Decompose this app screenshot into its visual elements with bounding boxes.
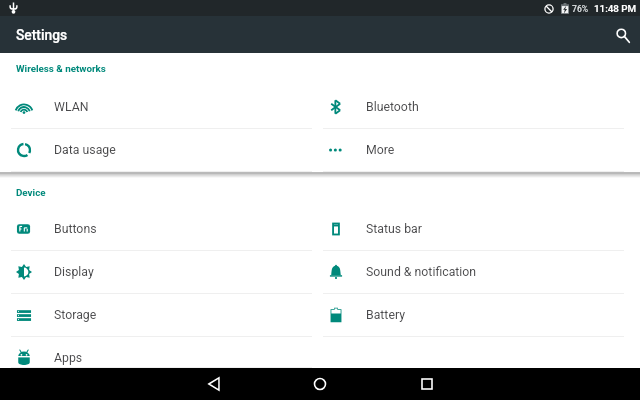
button[interactable]: Buttons bbox=[0, 208, 312, 250]
button[interactable]: Display bbox=[0, 251, 312, 293]
staticText: Sound & notification bbox=[366, 265, 477, 279]
button[interactable]: Battery bbox=[312, 294, 624, 336]
staticText: Wireless & networks bbox=[16, 63, 106, 74]
button[interactable]: Home bbox=[291, 368, 349, 400]
button[interactable]: Bluetooth bbox=[312, 86, 624, 128]
staticText: WLAN bbox=[54, 100, 89, 114]
button[interactable]: Status bar bbox=[312, 208, 624, 250]
staticText: 11:48 PM bbox=[594, 3, 637, 14]
staticText: Device bbox=[16, 187, 46, 198]
staticText: Settings bbox=[16, 27, 68, 43]
button[interactable]: Sound & notification bbox=[312, 251, 624, 293]
button[interactable]: Search bbox=[608, 20, 638, 50]
staticText: Status bar bbox=[366, 222, 422, 236]
button[interactable]: More bbox=[312, 129, 624, 171]
staticText: Bluetooth bbox=[366, 100, 419, 114]
button[interactable]: WLAN bbox=[0, 86, 312, 128]
button[interactable]: Storage bbox=[0, 294, 312, 336]
staticText: Battery bbox=[366, 308, 406, 322]
staticText: More bbox=[366, 143, 395, 157]
button[interactable]: Recent apps bbox=[398, 368, 456, 400]
staticText: 76% bbox=[572, 4, 589, 14]
button[interactable]: Data usage bbox=[0, 129, 312, 171]
button[interactable]: Back bbox=[184, 368, 242, 400]
staticText: Apps bbox=[54, 351, 83, 365]
staticText: Storage bbox=[54, 308, 97, 322]
button[interactable]: Apps bbox=[0, 337, 312, 367]
staticText: Display bbox=[54, 265, 94, 279]
staticText: Buttons bbox=[54, 222, 97, 236]
staticText: Data usage bbox=[54, 143, 116, 157]
